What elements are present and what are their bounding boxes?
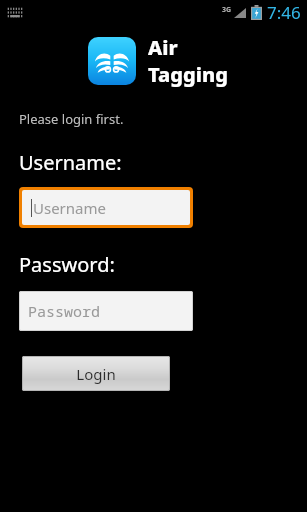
staticText: Tagging (148, 61, 228, 88)
staticText: Password (28, 301, 101, 321)
button[interactable]: Login (22, 356, 170, 391)
button[interactable]: Username (22, 190, 190, 225)
staticText: 3G (222, 5, 232, 15)
staticText: 7:46 (267, 1, 301, 24)
staticText: Username: (19, 149, 122, 176)
staticText: Please login first. (19, 110, 124, 128)
staticText: Air (148, 34, 178, 61)
staticText: Password: (19, 251, 115, 278)
button[interactable]: Password (19, 291, 193, 331)
staticText: Login (76, 364, 116, 384)
staticText: Username (33, 198, 106, 218)
